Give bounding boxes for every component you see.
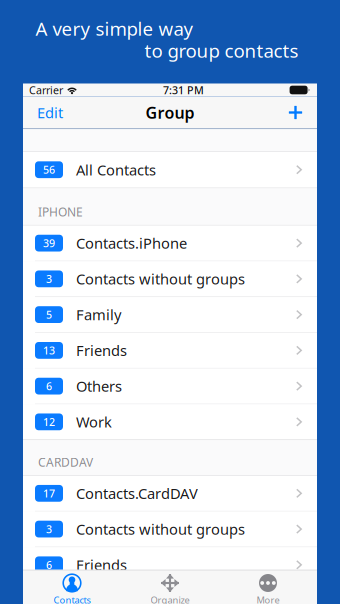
staticText: More bbox=[256, 594, 279, 604]
button[interactable]: 3 bbox=[23, 261, 317, 297]
staticText: Contacts bbox=[53, 594, 90, 604]
button[interactable]: More bbox=[219, 570, 317, 604]
staticText: Carrier bbox=[29, 83, 63, 97]
button[interactable]: 5 bbox=[23, 297, 317, 333]
button[interactable]: 6 bbox=[23, 547, 317, 583]
staticText: IPHONE bbox=[38, 204, 83, 220]
staticText: Friends bbox=[76, 555, 127, 575]
staticText: 7:31 PM bbox=[163, 83, 204, 97]
button[interactable]: Edit bbox=[23, 97, 73, 128]
staticText: CARDDAV bbox=[38, 454, 93, 470]
staticText: Contacts without groups bbox=[76, 269, 245, 289]
button[interactable]: 17 bbox=[23, 476, 317, 512]
staticText: 5 bbox=[46, 307, 52, 322]
staticText: Contacts.CardDAV bbox=[76, 484, 198, 503]
staticText: 56 bbox=[43, 163, 55, 177]
staticText: 39 bbox=[43, 236, 55, 250]
button[interactable]: Add group bbox=[277, 98, 317, 126]
staticText: Edit bbox=[37, 103, 63, 122]
staticText: to group contacts bbox=[144, 38, 298, 63]
staticText: A very simple way bbox=[35, 16, 193, 41]
button[interactable]: 39 bbox=[23, 226, 317, 261]
staticText: Contacts without groups bbox=[76, 519, 245, 539]
button[interactable]: Organize bbox=[121, 570, 219, 604]
staticText: 6 bbox=[46, 379, 52, 393]
staticText: 12 bbox=[43, 415, 55, 429]
staticText: Others bbox=[76, 376, 122, 396]
staticText: All Contacts bbox=[76, 160, 156, 179]
staticText: 3 bbox=[46, 272, 52, 286]
button[interactable]: 12 bbox=[23, 404, 317, 440]
staticText: Family bbox=[76, 305, 121, 324]
staticText: 3 bbox=[46, 522, 52, 536]
staticText: 6 bbox=[46, 558, 52, 572]
button[interactable]: Contacts bbox=[23, 570, 121, 604]
staticText: 13 bbox=[43, 343, 55, 357]
button[interactable]: 6 bbox=[23, 369, 317, 404]
staticText: Group bbox=[145, 102, 194, 123]
staticText: Work bbox=[76, 412, 112, 432]
staticText: Friends bbox=[76, 341, 127, 360]
staticText: 17 bbox=[43, 486, 55, 500]
staticText: Organize bbox=[150, 594, 189, 604]
button[interactable]: 3 bbox=[23, 511, 317, 547]
button[interactable]: 56 bbox=[23, 152, 317, 188]
button[interactable]: 13 bbox=[23, 333, 317, 369]
staticText: Contacts.iPhone bbox=[76, 233, 187, 253]
